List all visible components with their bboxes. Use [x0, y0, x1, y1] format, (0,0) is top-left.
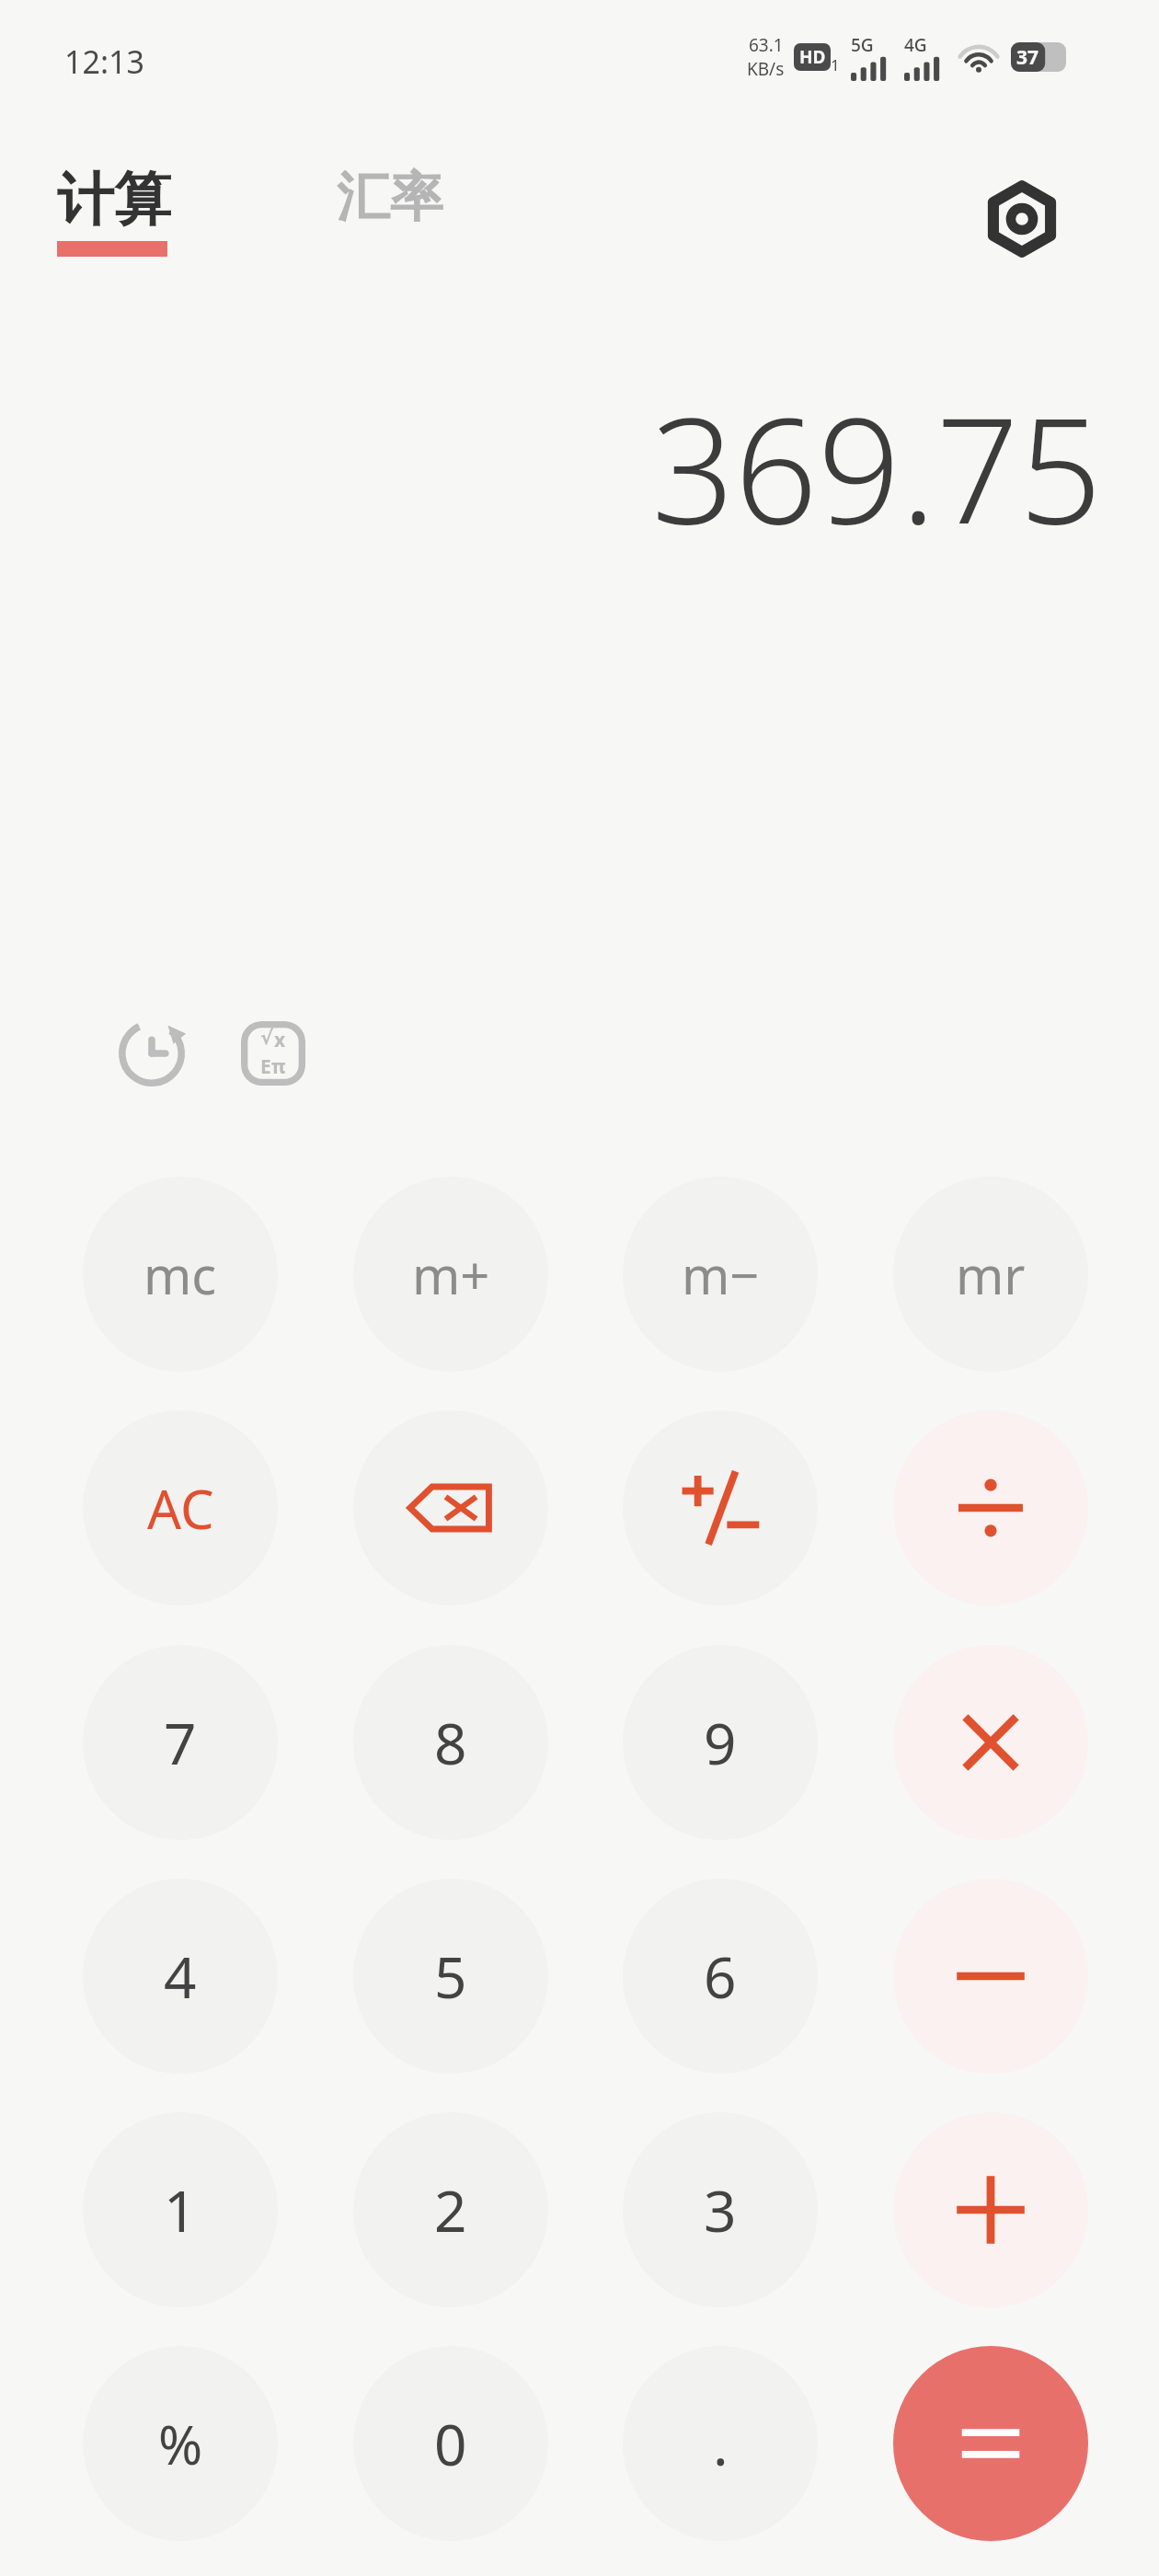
button[interactable]: Divide — [893, 1410, 1088, 1605]
staticText: 7 — [164, 1704, 197, 1781]
staticText: 4 — [164, 1938, 197, 2015]
button[interactable]: 2 — [353, 2112, 548, 2307]
button[interactable]: Equals — [893, 2346, 1088, 2541]
button[interactable]: . — [623, 2346, 818, 2541]
staticText: 1 — [831, 54, 840, 75]
staticText: . — [713, 2405, 729, 2482]
staticText: 1 — [164, 2171, 197, 2248]
button[interactable]: 7 — [83, 1645, 278, 1840]
button[interactable]: mc — [83, 1177, 278, 1372]
button[interactable]: Scientific — [223, 1003, 324, 1104]
staticText: m+ — [412, 1239, 490, 1309]
button[interactable]: 计算 — [44, 158, 184, 262]
button[interactable]: History — [101, 1003, 202, 1104]
staticText: 2 — [434, 2171, 467, 2248]
button[interactable]: Plus minus — [623, 1410, 818, 1605]
button[interactable]: % — [83, 2346, 278, 2541]
button[interactable]: 0 — [353, 2346, 548, 2541]
button[interactable]: mr — [893, 1177, 1088, 1372]
button[interactable]: Multiply — [893, 1645, 1088, 1840]
staticText: 4G — [904, 33, 927, 57]
staticText: AC — [147, 1472, 214, 1545]
staticText: 37 — [1016, 44, 1039, 71]
staticText: KB/s — [747, 57, 785, 81]
button[interactable]: Backspace — [353, 1410, 548, 1605]
staticText: 5 — [434, 1938, 467, 2015]
staticText: % — [158, 2408, 203, 2480]
staticText: mc — [143, 1239, 217, 1309]
staticText: 6 — [704, 1938, 737, 2015]
button[interactable]: m− — [623, 1177, 818, 1372]
staticText: π — [271, 1053, 286, 1080]
staticText: 9 — [704, 1704, 737, 1781]
staticText: x — [274, 1027, 286, 1053]
staticText: 12:13 — [64, 40, 144, 83]
button[interactable]: Minus — [893, 1879, 1088, 2074]
staticText: m− — [682, 1239, 760, 1309]
staticText: 3 — [704, 2171, 737, 2248]
button[interactable]: m+ — [353, 1177, 548, 1372]
staticText: 0 — [434, 2405, 467, 2482]
button[interactable]: 6 — [623, 1879, 818, 2074]
staticText: E — [260, 1053, 271, 1080]
staticText: mr — [956, 1239, 1026, 1309]
button[interactable]: AC — [83, 1410, 278, 1605]
staticText: 计算 — [57, 164, 171, 236]
button[interactable]: 汇率 — [324, 158, 456, 236]
button[interactable]: 1 — [83, 2112, 278, 2307]
button[interactable]: 4 — [83, 1879, 278, 2074]
staticText: 63.1 — [749, 33, 784, 57]
staticText: 5G — [851, 33, 874, 57]
staticText: 汇率 — [337, 164, 443, 231]
button[interactable]: 9 — [623, 1645, 818, 1840]
staticText: HD — [799, 45, 826, 69]
button[interactable]: Settings — [973, 170, 1071, 268]
staticText: √ — [260, 1027, 274, 1049]
button[interactable]: 8 — [353, 1645, 548, 1840]
staticText: 8 — [434, 1704, 467, 1781]
button[interactable]: Plus — [893, 2112, 1088, 2307]
button[interactable]: 3 — [623, 2112, 818, 2307]
staticText: 369.75 — [651, 368, 1102, 566]
button[interactable]: 5 — [353, 1879, 548, 2074]
